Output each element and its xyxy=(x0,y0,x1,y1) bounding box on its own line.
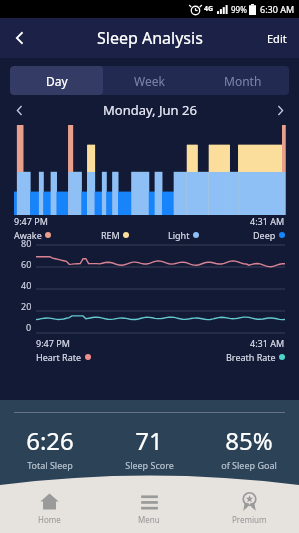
staticText: Heart Rate xyxy=(36,351,82,363)
staticText: Deep xyxy=(253,229,276,241)
staticText: Monday, Jun 26 xyxy=(103,101,197,119)
staticText: 99% xyxy=(231,4,247,15)
staticText: Week xyxy=(134,73,165,89)
button[interactable]: Edit xyxy=(263,25,291,52)
button[interactable]: Menu xyxy=(99,483,199,533)
button[interactable]: Premium xyxy=(199,483,299,533)
staticText: 80 xyxy=(21,237,32,249)
button[interactable]: Next day xyxy=(265,95,295,125)
button[interactable]: Day xyxy=(10,66,103,95)
staticText: 6:26 xyxy=(26,424,74,457)
button[interactable]: 6:26 xyxy=(0,424,99,471)
staticText: Home xyxy=(38,514,61,525)
staticText: 6:30 AM xyxy=(260,3,295,15)
staticText: 4:31 AM xyxy=(250,215,285,227)
staticText: 71 xyxy=(135,424,163,457)
staticText: Day xyxy=(46,73,68,89)
button[interactable]: Back xyxy=(0,18,40,58)
staticText: 9:47 PM xyxy=(14,215,48,227)
staticText: 20 xyxy=(21,300,32,312)
staticText: Edit xyxy=(267,31,287,46)
staticText: 40 xyxy=(21,279,32,291)
staticText: Breath Rate xyxy=(226,351,276,363)
staticText: Menu xyxy=(138,514,160,525)
staticText: Light xyxy=(168,229,190,241)
button[interactable]: Month xyxy=(196,66,289,95)
button[interactable]: Previous day xyxy=(4,95,34,125)
staticText: 4G xyxy=(204,4,214,14)
staticText: REM xyxy=(101,229,120,241)
button[interactable]: Home xyxy=(0,483,99,533)
staticText: of Sleep Goal xyxy=(221,459,277,471)
staticText: 9:47 PM xyxy=(36,337,70,349)
button[interactable]: 71 xyxy=(99,424,199,471)
button[interactable]: Week xyxy=(103,66,196,95)
staticText: Premium xyxy=(232,514,267,525)
staticText: Awake xyxy=(14,229,42,241)
staticText: 4:31 AM xyxy=(250,337,285,349)
button[interactable]: 85% xyxy=(199,424,299,471)
staticText: 60 xyxy=(21,258,32,270)
staticText: Sleep Score xyxy=(125,459,174,471)
staticText: 0 xyxy=(26,321,32,333)
staticText: Sleep Analysis xyxy=(97,27,203,49)
staticText: Total Sleep xyxy=(27,459,73,471)
staticText: 85% xyxy=(225,424,273,457)
staticText: Month xyxy=(224,73,262,89)
